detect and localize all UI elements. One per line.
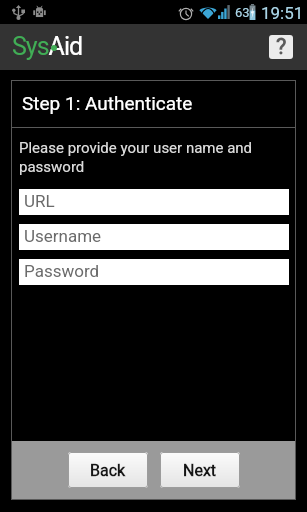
staticText: Please provide your user name and passwo… [19, 139, 277, 176]
button[interactable]: URL [19, 189, 289, 215]
staticText: Step 1: Authenticate [22, 92, 193, 114]
staticText: Username [24, 226, 102, 246]
staticText: URL [24, 191, 55, 211]
staticText: Back [90, 461, 126, 480]
staticText: ? [276, 35, 287, 58]
button[interactable]: Next [160, 452, 240, 488]
button[interactable]: Back [68, 452, 148, 488]
button[interactable]: Password [19, 259, 289, 285]
staticText: 63 [235, 5, 250, 20]
staticText: Password [24, 261, 100, 281]
staticText: 19:51 [261, 3, 304, 23]
staticText: Next [183, 461, 217, 480]
button[interactable]: Help [269, 35, 293, 59]
staticText: SysAid [12, 32, 83, 61]
button[interactable]: Username [19, 224, 289, 250]
